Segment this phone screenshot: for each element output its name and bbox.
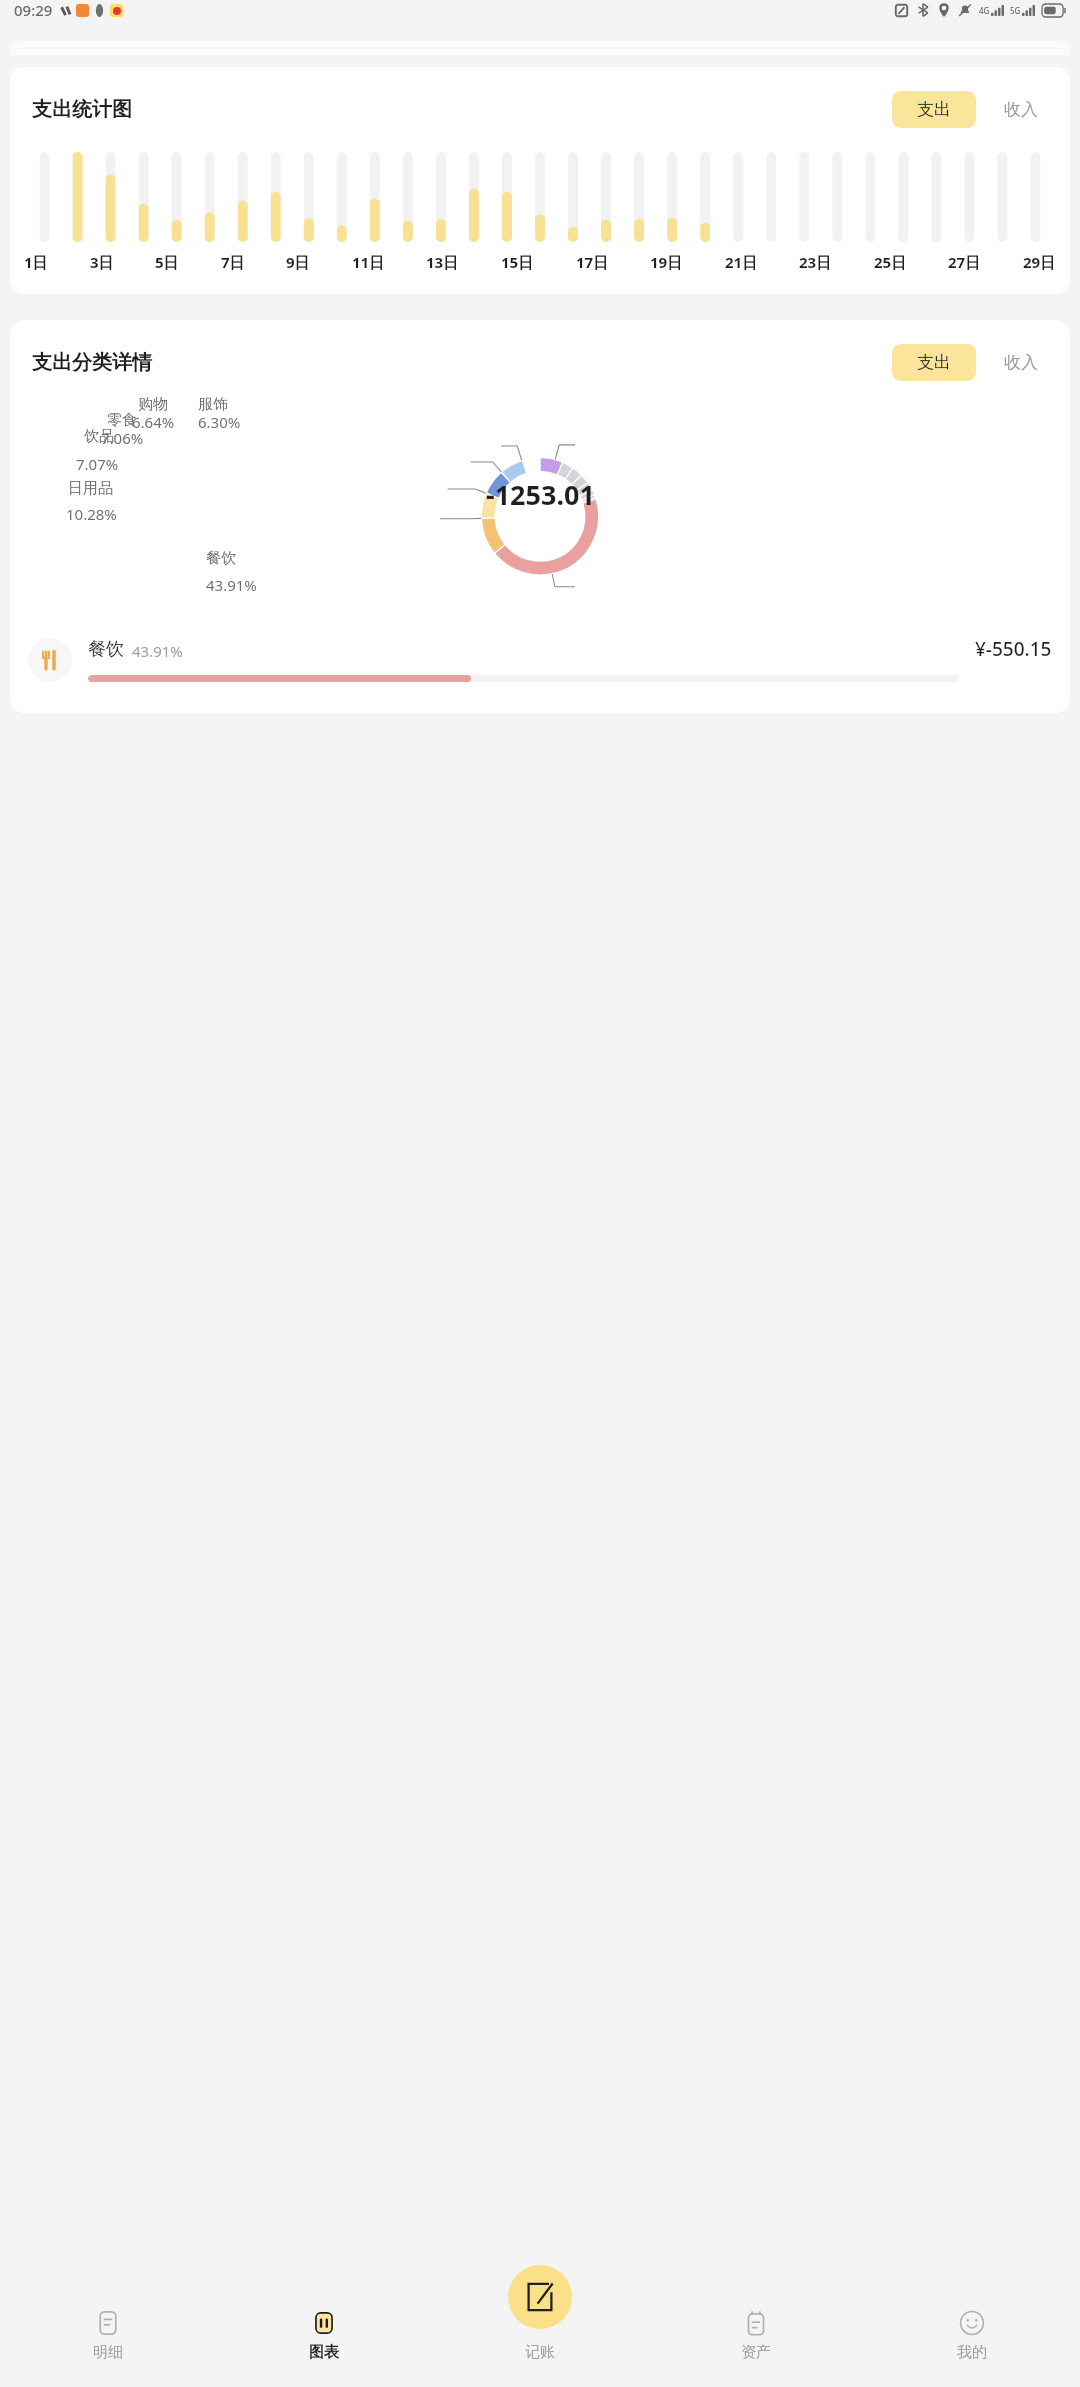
staticText: 支出	[917, 352, 951, 373]
button[interactable]: 支出	[892, 91, 976, 128]
staticText: 25日	[874, 252, 907, 272]
staticText: 7.07%	[76, 454, 119, 474]
button[interactable]: 餐饮	[10, 636, 1070, 683]
staticText: 5日	[155, 252, 179, 272]
button[interactable]: 支出	[892, 344, 976, 381]
button[interactable]: 记账	[508, 2265, 572, 2329]
staticText: 收入	[1004, 99, 1038, 120]
staticText: 支出统计图	[32, 97, 132, 122]
staticText: 4G	[979, 5, 990, 16]
staticText: 7日	[221, 252, 245, 272]
button[interactable]: 图表	[216, 2305, 432, 2366]
staticText: 29日	[1023, 252, 1056, 272]
staticText: 09:29	[14, 0, 53, 20]
button[interactable]: 资产	[648, 2305, 864, 2366]
staticText: 7.06%	[101, 428, 144, 448]
staticText: 11日	[352, 252, 385, 272]
staticText: 13日	[426, 252, 459, 272]
staticText: 5G	[1010, 5, 1021, 16]
staticText: 记账	[525, 2343, 555, 2362]
staticText: 饮品	[84, 427, 114, 446]
staticText: 图表	[309, 2343, 339, 2362]
staticText: 餐饮	[206, 549, 236, 568]
staticText: 27日	[948, 252, 981, 272]
staticText: 日用品	[68, 479, 113, 498]
staticText: 服饰	[198, 395, 228, 414]
staticText: 明细	[93, 2343, 123, 2362]
staticText: 19日	[650, 252, 683, 272]
staticText: 9日	[286, 252, 310, 272]
staticText: 支出	[917, 99, 951, 120]
staticText: 餐饮	[88, 638, 124, 661]
staticText: 收入	[1004, 352, 1038, 373]
staticText: 我的	[957, 2343, 987, 2362]
button[interactable]: 记账	[432, 2305, 648, 2366]
button[interactable]: 收入	[998, 91, 1044, 128]
button[interactable]: 我的	[864, 2305, 1080, 2366]
staticText: 17日	[576, 252, 609, 272]
staticText: 资产	[741, 2343, 771, 2362]
button[interactable]: 收入	[998, 344, 1044, 381]
staticText: 10.28%	[66, 504, 117, 524]
staticText: 6.30%	[198, 412, 241, 432]
staticText: 15日	[501, 252, 534, 272]
staticText: 3日	[90, 252, 114, 272]
staticText: 1日	[24, 252, 48, 272]
staticText: 43.91%	[206, 575, 257, 595]
staticText: 支出分类详情	[32, 350, 152, 375]
staticText: 23日	[799, 252, 832, 272]
staticText: 购物	[138, 395, 168, 414]
staticText: 43.91%	[132, 641, 183, 661]
staticText: 6.64%	[132, 412, 175, 432]
staticText: 21日	[725, 252, 758, 272]
button[interactable]: 明细	[0, 2305, 216, 2366]
staticText: -1253.01	[486, 476, 595, 513]
staticText: ¥-550.15	[975, 636, 1052, 662]
staticText: 零食	[107, 411, 137, 430]
